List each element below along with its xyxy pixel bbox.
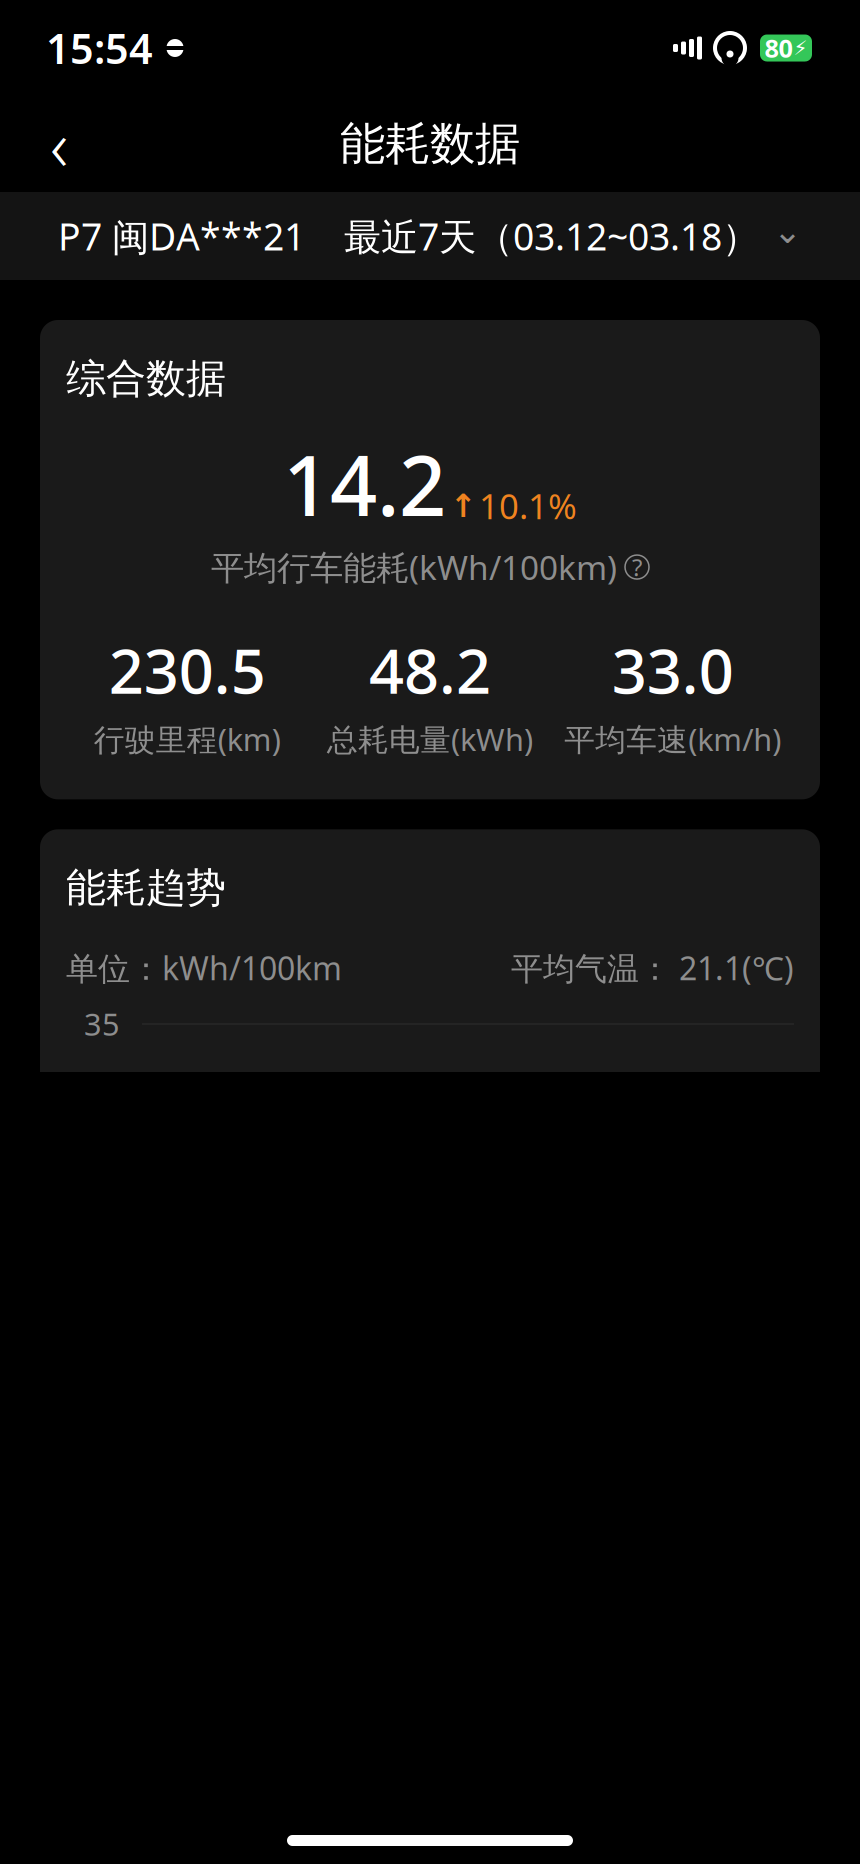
staticText: 综合数据 xyxy=(66,354,226,403)
staticText: 能耗数据 xyxy=(340,116,520,172)
staticText: 14.2 xyxy=(283,429,446,539)
staticText: ? xyxy=(632,551,642,583)
staticText: ⚡︎ xyxy=(793,37,807,59)
staticText: 230.5 xyxy=(109,629,266,711)
staticText: 15:54 xyxy=(46,21,153,75)
button[interactable]: 关于平均行车能耗 xyxy=(211,545,649,589)
staticText: 35 xyxy=(84,1004,120,1044)
button[interactable]: Back xyxy=(24,109,94,179)
staticText: ⌄ xyxy=(773,211,802,251)
staticText: ‹ xyxy=(50,98,68,190)
staticText: 总耗电量(kWh) xyxy=(327,719,533,759)
staticText: 最近7天（03.12~03.18） xyxy=(344,211,759,261)
staticText: 能耗趋势 xyxy=(66,863,226,912)
staticText: 48.2 xyxy=(369,629,491,711)
staticText: 行驶里程(km) xyxy=(94,719,281,759)
staticText: 单位：kWh/100km xyxy=(66,946,342,989)
button[interactable]: 最近7天（03.12~03.18） xyxy=(344,203,802,269)
staticText: 平均车速(km/h) xyxy=(564,719,781,759)
staticText: 平均气温： 21.1(℃) xyxy=(511,946,794,989)
staticText: P7 闽DA***21 xyxy=(58,211,305,261)
staticText: 80 xyxy=(764,31,792,65)
staticText: 33.0 xyxy=(612,629,734,711)
staticText: 10.1% xyxy=(479,483,577,529)
staticText: 20.4kWh xyxy=(359,1802,500,1848)
staticText: ↑ xyxy=(450,488,477,524)
staticText: 平均行车能耗(kWh/100km) xyxy=(211,545,617,589)
